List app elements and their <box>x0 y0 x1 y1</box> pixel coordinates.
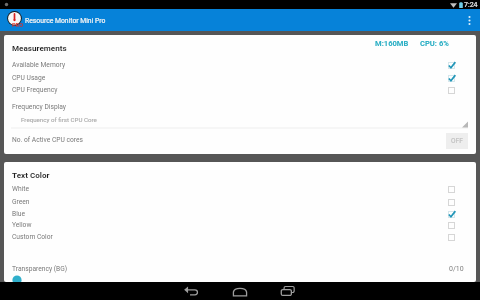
staticText: OFF <box>451 137 463 145</box>
button[interactable]: Custom Color <box>4 231 476 243</box>
staticText: 0/10 <box>449 265 464 273</box>
staticText: White <box>12 185 29 193</box>
staticText: CPU Frequency <box>12 86 58 94</box>
staticText: Resource Monitor Mini Pro <box>25 17 106 25</box>
staticText: Yellow <box>12 221 32 229</box>
staticText: CPU: 6% <box>420 39 449 48</box>
staticText: PRO <box>12 22 24 29</box>
button[interactable]: Home <box>218 282 262 300</box>
staticText: CPU Usage <box>12 74 46 82</box>
staticText: No. of Active CPU cores <box>12 136 83 144</box>
button[interactable]: More options <box>460 9 478 31</box>
staticText: Text Color <box>12 170 50 179</box>
button[interactable]: Recent apps <box>266 282 310 300</box>
button[interactable]: Yellow <box>4 219 476 231</box>
button[interactable]: Available Memory <box>4 59 476 71</box>
staticText: Frequency Display <box>12 103 67 111</box>
button[interactable]: Blue <box>4 208 476 220</box>
button[interactable]: White <box>4 183 476 195</box>
button[interactable]: Green <box>4 196 476 208</box>
staticText: Custom Color <box>12 233 53 241</box>
staticText: Blue <box>12 210 26 218</box>
staticText: Transparency (BG) <box>12 265 68 273</box>
button[interactable]: CPU Frequency <box>4 84 476 96</box>
staticText: M:160MB <box>375 39 409 48</box>
staticText: 7:24 <box>464 1 478 9</box>
button[interactable]: Back <box>170 282 214 300</box>
button[interactable]: No. of Active CPU cores <box>4 128 476 154</box>
staticText: Measurements <box>12 43 67 52</box>
staticText: Frequency of first CPU Core <box>21 116 97 123</box>
button[interactable]: Transparency (BG) <box>4 262 476 282</box>
staticText: Green <box>12 198 30 206</box>
button[interactable]: Frequency Display <box>4 100 476 128</box>
staticText: Available Memory <box>12 61 66 69</box>
button[interactable]: CPU Usage <box>4 72 476 84</box>
